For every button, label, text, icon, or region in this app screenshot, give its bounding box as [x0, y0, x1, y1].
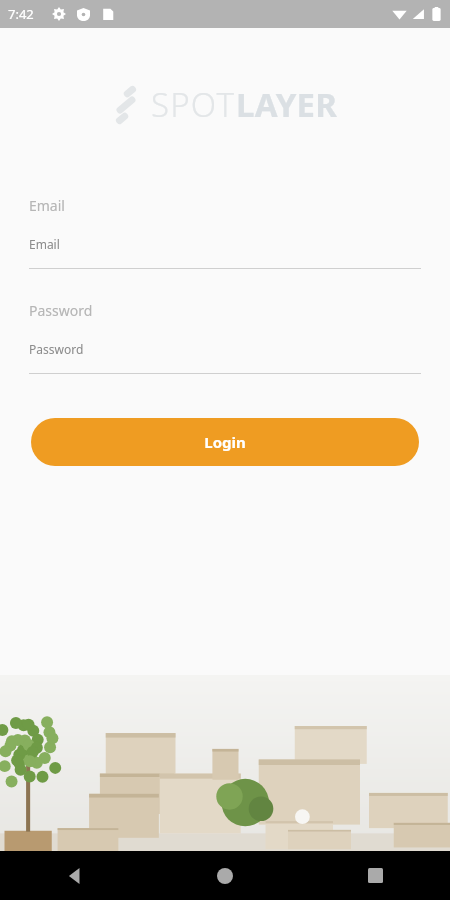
button[interactable]: Home — [150, 851, 300, 900]
button[interactable]: Email — [29, 196, 421, 269]
button[interactable]: Password — [29, 301, 421, 374]
button[interactable]: Back — [0, 851, 150, 900]
staticText: Password — [29, 341, 84, 357]
staticText: Login — [204, 432, 246, 452]
button[interactable]: Recent apps — [300, 851, 450, 900]
staticText: SPOT — [151, 82, 236, 127]
staticText: 7:42 — [8, 5, 34, 23]
staticText: Email — [29, 196, 65, 215]
staticText: LAYER — [236, 82, 338, 127]
button[interactable]: Login — [31, 418, 419, 466]
staticText: Email — [29, 236, 60, 252]
staticText: Password — [29, 301, 93, 320]
